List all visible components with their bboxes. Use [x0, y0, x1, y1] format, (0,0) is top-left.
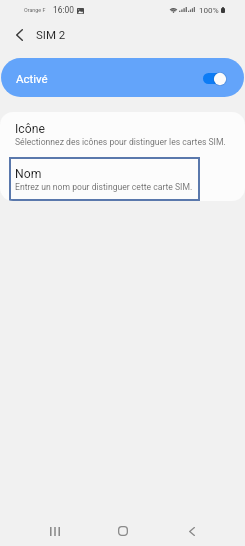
staticText: Icône — [15, 122, 45, 136]
staticText: SIM 2 — [36, 28, 66, 41]
staticText: Activé — [16, 72, 48, 85]
button[interactable]: Activé — [1, 58, 244, 97]
staticText: Sélectionnez des icônes pour distinguer … — [15, 137, 226, 147]
button[interactable]: Nom — [9, 157, 200, 201]
staticText: 100% — [199, 5, 219, 14]
button[interactable]: Home — [105, 513, 141, 546]
staticText: Nom — [15, 167, 42, 181]
button[interactable]: Icône — [0, 112, 245, 156]
button[interactable]: Navigate up — [7, 23, 31, 47]
staticText: Orange F — [24, 7, 46, 13]
staticText: Entrez un nom pour distinguer cette cart… — [15, 182, 193, 192]
staticText: 16:00 — [53, 5, 74, 15]
button[interactable]: Back — [174, 513, 210, 546]
button[interactable]: Recent apps — [37, 513, 73, 546]
